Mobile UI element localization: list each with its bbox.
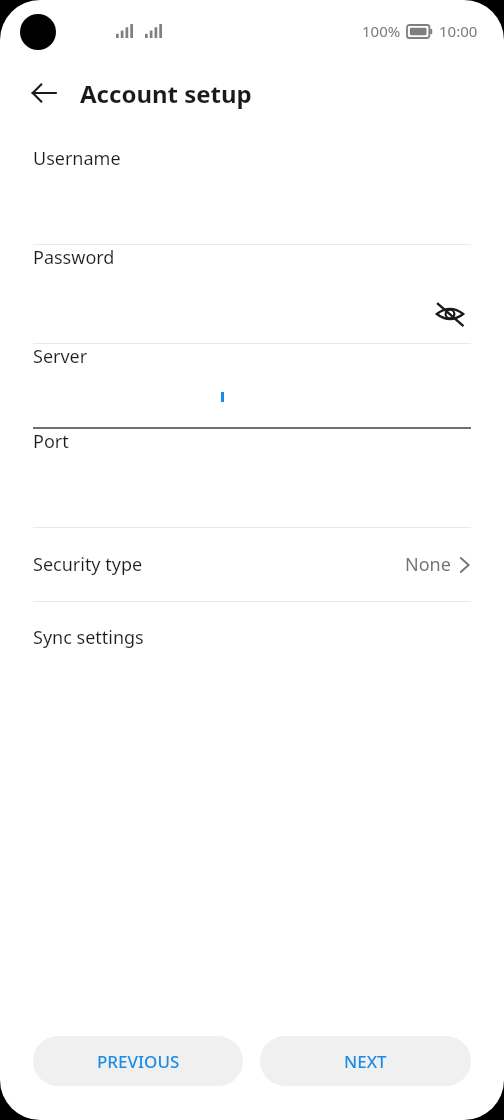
button[interactable]: PREVIOUS <box>33 1036 243 1086</box>
staticText: Security type <box>33 552 143 577</box>
button[interactable]: Server <box>0 344 504 429</box>
button[interactable]: Sync settings <box>0 602 504 672</box>
staticText: NEXT <box>344 1050 387 1073</box>
staticText: Server <box>33 344 88 369</box>
button[interactable]: Username <box>0 146 504 245</box>
button[interactable]: Hide password <box>429 293 471 335</box>
button[interactable]: Back <box>20 69 68 117</box>
staticText: 10:00 <box>439 21 478 41</box>
staticText: 100% <box>362 21 401 41</box>
staticText: Port <box>33 429 69 454</box>
button[interactable]: Password <box>0 245 504 344</box>
staticText: Sync settings <box>33 625 144 650</box>
staticText: None <box>405 552 451 577</box>
staticText: Password <box>33 245 115 270</box>
button[interactable]: Security type <box>0 528 504 602</box>
staticText: Username <box>33 146 121 171</box>
button[interactable]: NEXT <box>260 1036 471 1086</box>
staticText: PREVIOUS <box>97 1050 180 1073</box>
staticText: Account setup <box>80 77 252 110</box>
button[interactable]: Port <box>0 429 504 528</box>
